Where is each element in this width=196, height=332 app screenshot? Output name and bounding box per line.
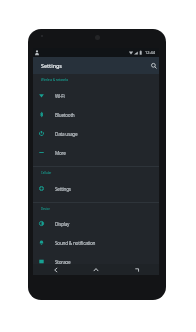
button[interactable]: Data usage xyxy=(33,124,159,143)
staticText: Wireless & networks xyxy=(41,78,69,82)
button[interactable]: Wi-Fi xyxy=(33,86,159,105)
staticText: More xyxy=(55,150,66,156)
staticText: Data usage xyxy=(55,131,78,137)
staticText: Wi-Fi xyxy=(55,93,65,99)
staticText: Storage xyxy=(55,259,71,265)
button[interactable]: Sound & notification xyxy=(33,233,159,252)
button[interactable]: Bluetooth xyxy=(33,105,159,124)
staticText: Display xyxy=(55,221,70,227)
staticText: Device xyxy=(41,207,50,211)
button[interactable]: Home xyxy=(78,264,114,275)
button[interactable]: More xyxy=(33,143,159,162)
staticText: Settings xyxy=(41,62,62,69)
staticText: Bluetooth xyxy=(55,112,75,118)
button[interactable]: Back xyxy=(38,264,74,275)
button[interactable]: Display xyxy=(33,214,159,233)
button[interactable]: Settings xyxy=(33,179,159,198)
staticText: Cellular xyxy=(41,171,52,175)
button[interactable]: Recent apps xyxy=(119,264,155,275)
button[interactable]: Storage xyxy=(33,252,159,271)
staticText: Sound & notification xyxy=(55,240,96,246)
staticText: 12:44 xyxy=(145,50,155,55)
staticText: Settings xyxy=(55,186,71,192)
button[interactable]: Search xyxy=(148,57,159,74)
